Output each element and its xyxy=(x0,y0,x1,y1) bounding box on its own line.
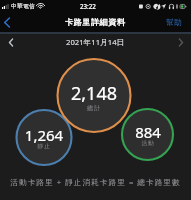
staticText: 2021年11月14日 xyxy=(66,37,125,48)
staticText: 中華電信 xyxy=(11,3,35,10)
staticText: 1,264 xyxy=(14,125,74,145)
button[interactable]: 下一天 xyxy=(170,34,191,48)
button[interactable]: 返回 xyxy=(0,12,18,32)
button[interactable]: 幫助 xyxy=(159,12,191,32)
staticText: 靜止 xyxy=(14,143,74,150)
button[interactable]: 上一天 xyxy=(0,34,21,48)
staticText: 23:22 xyxy=(80,2,96,10)
staticText: 884 xyxy=(118,122,178,142)
staticText: 幫助 xyxy=(166,17,182,27)
staticText: 卡路里詳細資料 xyxy=(65,17,126,27)
staticText: 總計 xyxy=(64,104,124,112)
staticText: 活動卡路里 + 靜止消耗卡路里 = 總卡路里數 xyxy=(0,177,191,188)
staticText: 2,148 xyxy=(64,81,124,106)
staticText: 活動 xyxy=(118,140,178,147)
